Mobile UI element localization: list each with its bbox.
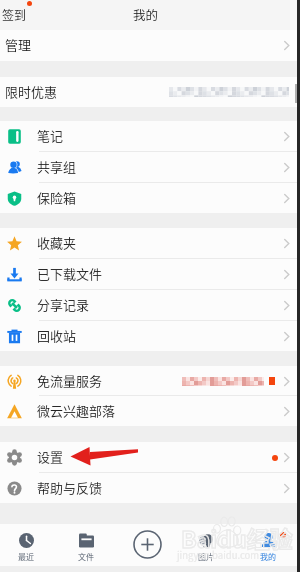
button[interactable]: 帮助与反馈 bbox=[0, 473, 300, 503]
button[interactable]: Add bbox=[125, 524, 169, 566]
button[interactable]: 签到 bbox=[0, 2, 35, 29]
button[interactable]: 收藏夹 bbox=[0, 228, 300, 259]
staticText: 最近 bbox=[18, 551, 34, 563]
staticText: 笔记 bbox=[37, 126, 64, 145]
button[interactable]: 管理 bbox=[0, 30, 300, 61]
staticText: jingyan.baidu.com bbox=[177, 548, 260, 562]
button[interactable]: 图片 bbox=[180, 524, 232, 566]
button[interactable]: 分享记录 bbox=[0, 290, 300, 321]
button[interactable]: 我的 bbox=[242, 524, 294, 566]
staticText: 管理 bbox=[5, 35, 32, 54]
button[interactable]: 共享组 bbox=[0, 152, 300, 183]
staticText: 分享记录 bbox=[37, 295, 90, 314]
staticText: 微云兴趣部落 bbox=[37, 401, 116, 420]
staticText: 我的 bbox=[133, 5, 159, 23]
button[interactable]: 设置 bbox=[0, 442, 300, 473]
button[interactable]: 回收站 bbox=[0, 321, 300, 351]
staticText: 保险箱 bbox=[37, 188, 77, 207]
staticText: 限时优惠 bbox=[5, 82, 58, 101]
staticText: 设置 bbox=[37, 447, 64, 466]
staticText: Baidu经验 bbox=[181, 521, 293, 554]
button[interactable]: 微云兴趣部落 bbox=[0, 396, 300, 426]
button[interactable]: 限时优惠 bbox=[0, 77, 300, 107]
staticText: 免流量服务 bbox=[37, 371, 103, 390]
staticText: 文件 bbox=[78, 551, 94, 563]
staticText: 回收站 bbox=[37, 326, 77, 345]
button[interactable]: 文件 bbox=[60, 524, 112, 566]
button[interactable]: 笔记 bbox=[0, 121, 300, 152]
staticText: 签到 bbox=[2, 6, 27, 23]
staticText: 我的 bbox=[260, 551, 276, 563]
staticText: 收藏夹 bbox=[37, 233, 77, 252]
staticText: 帮助与反馈 bbox=[37, 478, 103, 497]
staticText: 共享组 bbox=[37, 157, 77, 176]
staticText: 已下载文件 bbox=[37, 264, 103, 283]
button[interactable]: 已下载文件 bbox=[0, 259, 300, 290]
button[interactable]: 最近 bbox=[0, 524, 52, 566]
button[interactable]: 免流量服务 bbox=[0, 366, 300, 396]
staticText: 图片 bbox=[198, 551, 214, 563]
button[interactable]: 保险箱 bbox=[0, 183, 300, 213]
